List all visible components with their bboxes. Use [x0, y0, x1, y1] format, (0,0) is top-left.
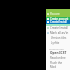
staticText: Mod [50, 65, 56, 69]
button[interactable]: Read online digest scan [46, 56, 70, 60]
button[interactable]: Mark all as/in with w [46, 30, 70, 35]
button[interactable]: Version tiles [46, 36, 70, 40]
staticText: Flush the update [50, 61, 70, 65]
staticText: Open ICST Internal [50, 51, 70, 55]
staticText: Version tiles [51, 36, 67, 40]
button[interactable]: Mod [46, 65, 70, 69]
staticText: antivirus app update [49, 47, 70, 50]
staticText: Create/install allow a oth [50, 26, 70, 30]
button[interactable]: Flush the update [46, 61, 70, 65]
staticText: Read online digest scan [50, 56, 70, 60]
staticText: Mark all as/in with w [50, 31, 70, 35]
button[interactable]: Lyrftte [46, 41, 70, 45]
staticText: Lyrftte [51, 41, 60, 45]
button[interactable]: Open ICST Internal [46, 51, 70, 55]
staticText: You are protected - st [50, 12, 70, 16]
button[interactable]: Create/install allow a oth [46, 26, 70, 30]
staticText: Create account [50, 17, 69, 20]
button[interactable]: antivirus app update [46, 46, 70, 50]
button[interactable]: Create/install allow th [46, 20, 70, 24]
button[interactable]: Create account [46, 17, 70, 20]
button[interactable]: You are protected - st [46, 12, 70, 16]
staticText: Create/install allow th [50, 20, 70, 24]
